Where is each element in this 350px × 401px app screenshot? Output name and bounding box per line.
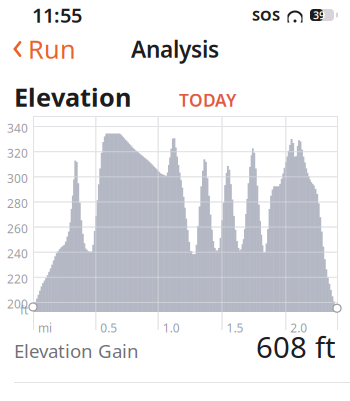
staticText: 260: [7, 221, 28, 236]
staticText: Elevation: [14, 80, 131, 114]
staticText: 200: [7, 296, 28, 312]
staticText: 608 ft: [256, 327, 336, 366]
staticText: Analysis: [131, 34, 219, 64]
staticText: 300: [7, 170, 28, 186]
staticText: Elevation Gain: [14, 338, 139, 363]
staticText: 280: [7, 195, 28, 211]
staticText: 2.0: [290, 320, 307, 336]
staticText: 340: [7, 120, 28, 136]
staticText: 320: [7, 145, 28, 161]
staticText: 220: [7, 271, 28, 287]
staticText: 240: [7, 246, 28, 262]
staticText: 11:55: [32, 2, 82, 28]
staticText: Run: [28, 32, 76, 66]
staticText: 1.0: [163, 320, 180, 336]
staticText: ft: [20, 302, 28, 318]
button[interactable]: Run: [0, 28, 76, 70]
staticText: TODAY: [179, 88, 236, 111]
staticText: 1.5: [226, 320, 243, 336]
staticText: mi: [38, 320, 52, 336]
staticText: 0.5: [100, 320, 117, 336]
staticText: SOS: [252, 5, 280, 25]
staticText: 39: [313, 8, 325, 22]
